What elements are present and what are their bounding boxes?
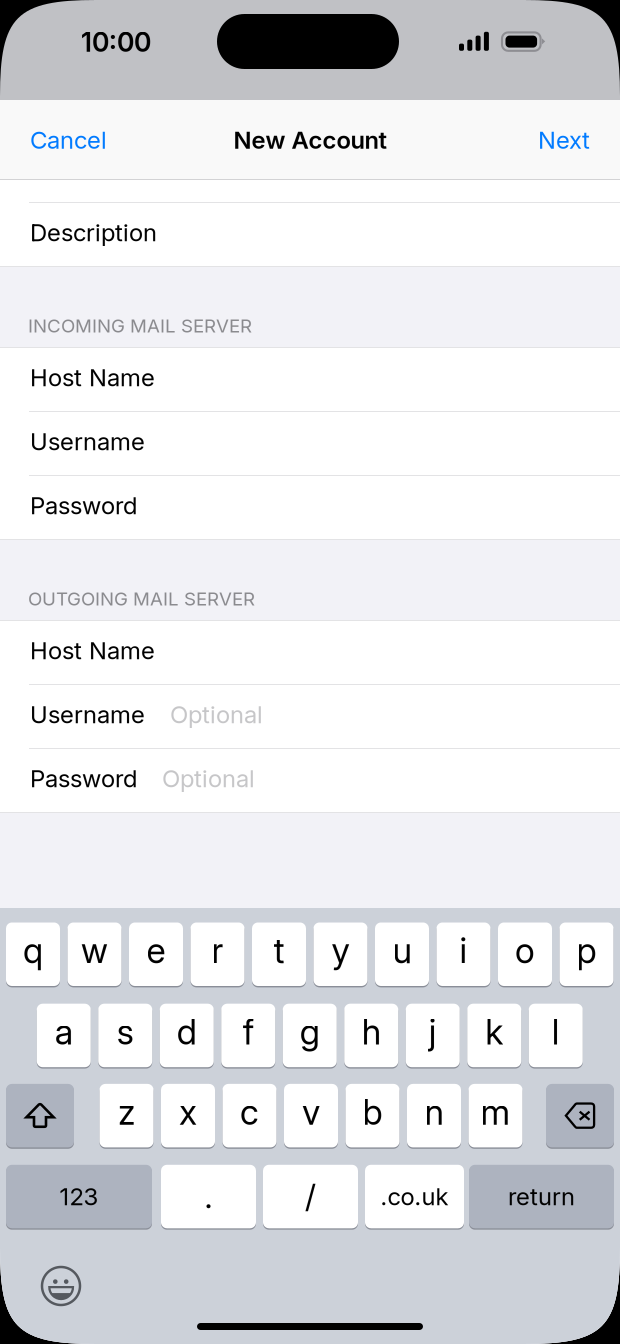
button[interactable]: z (99, 1083, 153, 1148)
button[interactable]: d (160, 1003, 214, 1068)
staticText: l (552, 1011, 560, 1053)
button[interactable]: Host Name (0, 347, 620, 411)
staticText: Username (30, 700, 145, 729)
staticText: Password (30, 491, 137, 520)
staticText: Next (538, 125, 590, 154)
button[interactable]: n (407, 1083, 461, 1148)
staticText: u (392, 930, 411, 972)
button[interactable]: l (529, 1003, 583, 1068)
staticText: e (146, 930, 165, 972)
button[interactable]: r (190, 921, 244, 987)
button[interactable]: o (498, 921, 552, 987)
button[interactable]: v (284, 1083, 338, 1148)
staticText: m (480, 1091, 510, 1133)
staticText: j (429, 1011, 437, 1053)
staticText: x (179, 1091, 197, 1133)
button[interactable]: m (468, 1083, 522, 1148)
staticText: Optional (170, 700, 263, 729)
staticText: New Account (233, 125, 386, 154)
staticText: i (459, 930, 467, 972)
button[interactable]: Password (0, 748, 620, 812)
staticText: f (243, 1011, 254, 1053)
button[interactable]: i (436, 921, 490, 987)
button[interactable]: Numbers (6, 1164, 152, 1229)
staticText: v (302, 1091, 320, 1133)
button[interactable]: e (129, 921, 183, 987)
button[interactable]: j (406, 1003, 460, 1068)
button[interactable]: Next (508, 100, 620, 180)
button[interactable]: Period (161, 1164, 256, 1229)
button[interactable]: Description (0, 202, 620, 266)
button[interactable]: b (345, 1083, 399, 1148)
button[interactable]: s (98, 1003, 152, 1068)
button[interactable]: u (375, 921, 429, 987)
staticText: / (305, 1177, 316, 1216)
button[interactable]: Username (0, 411, 620, 475)
staticText: 123 (59, 1182, 98, 1211)
staticText: s (117, 1011, 134, 1053)
staticText: . (204, 1177, 212, 1216)
button[interactable]: w (67, 921, 121, 987)
staticText: p (576, 930, 596, 972)
staticText: q (23, 930, 43, 972)
staticText: n (424, 1091, 443, 1133)
staticText: g (300, 1011, 320, 1053)
staticText: Password (30, 764, 137, 793)
button[interactable]: Cancel (0, 100, 137, 180)
staticText: b (362, 1091, 382, 1133)
button[interactable]: p (559, 921, 613, 987)
staticText: Description (30, 218, 157, 247)
staticText: r (211, 930, 223, 972)
button[interactable]: a (37, 1003, 91, 1068)
button[interactable]: g (283, 1003, 337, 1068)
staticText: c (240, 1091, 259, 1133)
button[interactable]: Shift (6, 1083, 74, 1148)
staticText: Cancel (30, 125, 107, 154)
button[interactable]: Dot co dot uk (365, 1164, 464, 1229)
staticText: z (118, 1091, 135, 1133)
button[interactable]: Password (0, 475, 620, 539)
button[interactable]: Delete (546, 1083, 614, 1148)
staticText: Optional (162, 764, 255, 793)
staticText: OUTGOING MAIL SERVER (28, 587, 255, 610)
staticText: t (273, 930, 284, 972)
staticText: Host Name (30, 363, 155, 392)
button[interactable]: Emoji keyboard (38, 1263, 84, 1309)
staticText: y (331, 930, 349, 972)
staticText: k (485, 1011, 503, 1053)
staticText: return (508, 1182, 575, 1211)
button[interactable]: h (344, 1003, 398, 1068)
staticText: d (177, 1011, 197, 1053)
staticText: 10:00 (81, 26, 151, 58)
button[interactable]: y (313, 921, 367, 987)
staticText: w (81, 930, 108, 972)
button[interactable]: c (222, 1083, 276, 1148)
staticText: Username (30, 427, 145, 456)
staticText: INCOMING MAIL SERVER (28, 314, 252, 337)
button[interactable]: t (252, 921, 306, 987)
staticText: h (362, 1011, 381, 1053)
button[interactable]: x (161, 1083, 215, 1148)
button[interactable]: f (221, 1003, 275, 1068)
staticText: Host Name (30, 636, 155, 665)
button[interactable]: Host Name (0, 620, 620, 684)
staticText: o (515, 930, 535, 972)
staticText: a (55, 1011, 73, 1053)
button[interactable]: Username (0, 684, 620, 748)
staticText: .co.uk (380, 1182, 448, 1211)
button[interactable]: q (6, 921, 60, 987)
button[interactable]: Return (469, 1164, 614, 1229)
button[interactable]: Slash (263, 1164, 358, 1229)
button[interactable]: k (467, 1003, 521, 1068)
